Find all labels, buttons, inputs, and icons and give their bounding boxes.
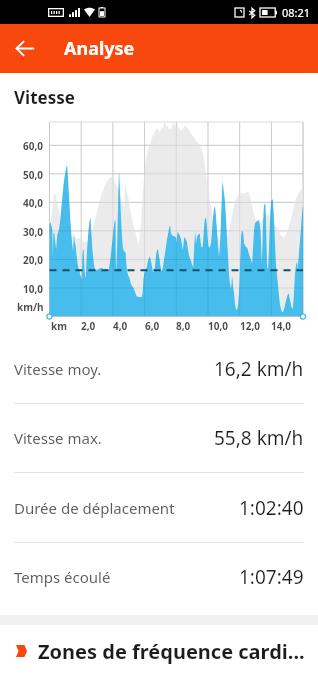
staticText: 10,0 bbox=[23, 282, 44, 296]
staticText: 55,8 km/h bbox=[214, 425, 304, 451]
staticText: Vitesse max. bbox=[14, 428, 102, 448]
staticText: 2,0 bbox=[81, 319, 96, 333]
staticText: Durée de déplacement bbox=[14, 498, 175, 518]
staticText: 08:21 bbox=[282, 5, 311, 20]
button[interactable]: Zones de fréquence cardi... bbox=[0, 625, 318, 677]
button[interactable]: Durée de déplacement bbox=[0, 473, 318, 542]
staticText: 20,0 bbox=[23, 253, 44, 267]
staticText: 6,0 bbox=[145, 319, 160, 333]
staticText: 50,0 bbox=[23, 168, 44, 182]
button[interactable]: Vitesse moy. bbox=[0, 334, 318, 403]
button[interactable]: Back bbox=[0, 24, 48, 73]
button[interactable]: Vitesse max. bbox=[0, 404, 318, 472]
staticText: 10,0 bbox=[208, 319, 229, 333]
staticText: Analyse bbox=[64, 36, 135, 61]
staticText: km bbox=[51, 319, 67, 333]
staticText: 12,0 bbox=[240, 319, 261, 333]
staticText: Vitesse bbox=[14, 86, 75, 109]
staticText: 1:02:40 bbox=[239, 495, 304, 521]
staticText: 30,0 bbox=[23, 225, 44, 239]
staticText: Zones de fréquence cardi... bbox=[38, 638, 305, 665]
staticText: 16,2 km/h bbox=[214, 356, 304, 382]
staticText: Temps écoulé bbox=[14, 567, 111, 587]
staticText: 60,0 bbox=[23, 139, 44, 153]
staticText: 8,0 bbox=[176, 319, 191, 333]
staticText: 4,0 bbox=[113, 319, 128, 333]
button[interactable]: Temps écoulé bbox=[0, 543, 318, 610]
staticText: 14,0 bbox=[271, 319, 292, 333]
staticText: 40,0 bbox=[23, 196, 44, 210]
staticText: 1:07:49 bbox=[239, 564, 304, 590]
staticText: Vitesse moy. bbox=[14, 359, 102, 379]
staticText: km/h bbox=[17, 300, 44, 314]
